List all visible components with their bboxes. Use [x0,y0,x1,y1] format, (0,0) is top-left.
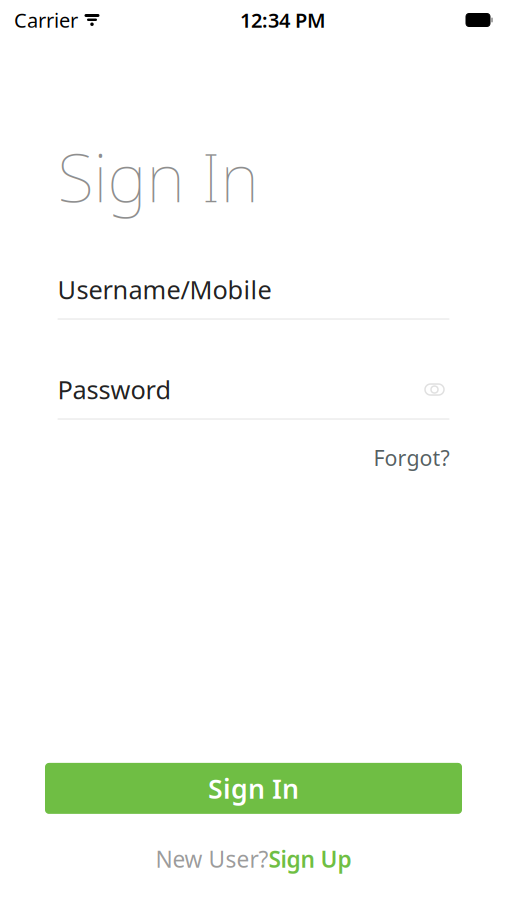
staticText: Username/Mobile [57,273,271,306]
staticText: Sign In [208,771,299,806]
button[interactable]: Show password [419,374,449,404]
staticText: Forgot? [373,443,449,472]
button[interactable]: Sign In [45,763,462,814]
staticText: Sign In [57,132,258,220]
button[interactable]: New User? [155,838,351,880]
staticText: 12:34 PM [240,7,326,33]
staticText: New User? [155,844,268,874]
staticText: Password [57,373,171,406]
button[interactable]: Forgot? [373,439,449,476]
staticText: Sign Up [268,844,351,874]
staticText: Carrier [14,7,78,33]
